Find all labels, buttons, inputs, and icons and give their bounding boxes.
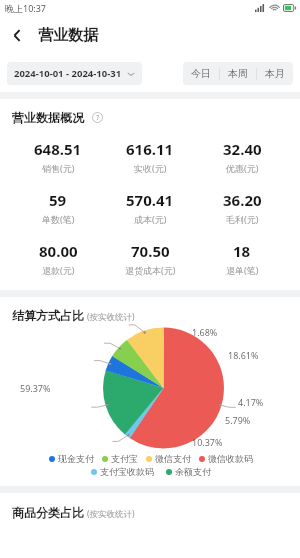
staticText: 36.20 <box>223 190 262 210</box>
staticText: 80.00 <box>39 241 78 261</box>
staticText: 今日 <box>191 67 211 80</box>
button[interactable]: 支付宝 <box>102 453 138 464</box>
staticText: 销售(元) <box>42 162 75 174</box>
button[interactable]: 648.51 <box>12 139 104 174</box>
staticText: 1.68% <box>192 326 218 338</box>
button[interactable]: 32.40 <box>196 139 288 174</box>
staticText: 实收(元) <box>134 162 167 174</box>
staticText: 现金支付 <box>58 453 94 464</box>
button[interactable]: 微信收款码 <box>199 453 253 464</box>
staticText: 余额支付 <box>175 466 211 477</box>
staticText: 70.50 <box>131 241 170 261</box>
staticText: 单数(笔) <box>42 213 75 225</box>
button[interactable]: 59 <box>12 190 104 225</box>
staticText: 支付宝 <box>111 453 138 464</box>
staticText: 648.51 <box>34 139 82 159</box>
button[interactable]: 36.20 <box>196 190 288 225</box>
staticText: 59.37% <box>20 382 51 394</box>
button[interactable]: 70.50 <box>104 241 196 276</box>
staticText: 4.17% <box>238 396 264 408</box>
staticText: 59 <box>49 190 67 210</box>
staticText: 商品分类占比 <box>12 505 84 520</box>
staticText: 本月 <box>265 67 285 80</box>
button[interactable]: 现金支付 <box>49 453 94 464</box>
staticText: 10.37% <box>192 436 223 448</box>
button[interactable]: 本月 <box>257 62 293 85</box>
staticText: 616.11 <box>126 139 174 159</box>
button[interactable]: 18 <box>196 241 288 276</box>
staticText: 5.79% <box>225 414 251 426</box>
staticText: 32.40 <box>223 139 262 159</box>
staticText: 退单(笔) <box>226 264 259 276</box>
staticText: 18.61% <box>228 349 259 361</box>
staticText: 微信支付 <box>155 453 191 464</box>
button[interactable]: 说明 <box>92 112 103 123</box>
staticText: 支付宝收款码 <box>100 466 154 477</box>
button[interactable]: Back <box>0 18 34 52</box>
staticText: ? <box>96 113 100 123</box>
button[interactable]: 支付宝收款码 <box>91 466 154 477</box>
button[interactable]: 余额支付 <box>166 466 211 477</box>
button[interactable]: 570.41 <box>104 190 196 225</box>
staticText: 结算方式占比 <box>12 308 84 323</box>
staticText: 570.41 <box>126 190 174 210</box>
staticText: 优惠(元) <box>226 162 259 174</box>
button[interactable]: 616.11 <box>104 139 196 174</box>
staticText: 退货成本(元) <box>125 264 176 276</box>
staticText: 18 <box>233 241 251 261</box>
staticText: 营业数据 <box>38 26 98 45</box>
staticText: 成本(元) <box>134 213 167 225</box>
button[interactable]: 2024-10-01 - 2024-10-31 <box>7 62 142 85</box>
staticText: 2024-10-01 - 2024-10-31 <box>14 67 122 80</box>
staticText: (按实收统计) <box>87 508 135 520</box>
staticText: 晚上10:37 <box>5 2 47 14</box>
staticText: 营业数据概况 <box>12 110 84 125</box>
button[interactable]: 今日 <box>183 62 219 85</box>
staticText: 本周 <box>228 67 248 80</box>
staticText: (按实收统计) <box>87 311 135 323</box>
staticText: 毛利(元) <box>226 213 259 225</box>
button[interactable]: 80.00 <box>12 241 104 276</box>
staticText: 退款(元) <box>42 264 75 276</box>
button[interactable]: 本周 <box>220 62 256 85</box>
staticText: 微信收款码 <box>208 453 253 464</box>
button[interactable]: 微信支付 <box>146 453 191 464</box>
